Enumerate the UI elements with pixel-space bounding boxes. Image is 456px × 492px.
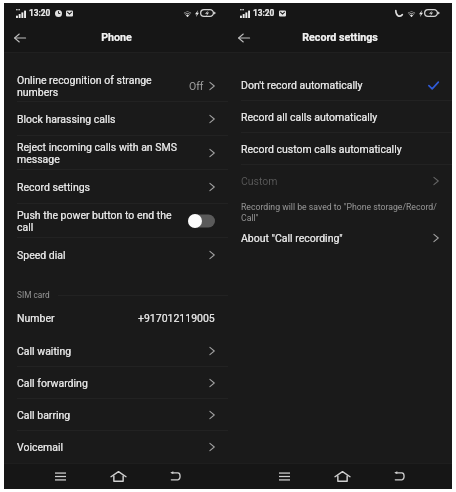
staticText: Voicemail xyxy=(17,441,203,453)
button[interactable]: Don't record automatically xyxy=(228,69,452,101)
staticText: 13:20 xyxy=(253,8,275,18)
button[interactable]: Call forwarding xyxy=(4,367,228,399)
button[interactable]: Back xyxy=(232,26,256,50)
staticText: Record custom calls automatically xyxy=(241,143,433,155)
staticText: Push the power button to end the call xyxy=(17,209,182,233)
button[interactable]: Back xyxy=(386,463,412,489)
button[interactable]: Block harassing calls xyxy=(4,102,228,136)
staticText: Record all calls automatically xyxy=(241,111,433,123)
button[interactable]: Custom xyxy=(228,165,452,197)
staticText: Block harassing calls xyxy=(17,113,203,125)
staticText: Speed dial xyxy=(17,249,203,261)
button[interactable]: Record settings xyxy=(4,170,228,204)
button[interactable]: Recent apps xyxy=(271,463,297,489)
staticText: Recording will be saved to "Phone storag… xyxy=(241,202,440,223)
button[interactable]: Call waiting xyxy=(4,334,228,367)
staticText: Custom xyxy=(241,175,427,187)
button[interactable]: Online recognition of strange numbers xyxy=(4,69,228,102)
button[interactable]: Speed dial xyxy=(4,238,228,272)
button[interactable]: Toggle off xyxy=(188,214,215,228)
button[interactable]: Home xyxy=(329,463,355,489)
staticText: Reject incoming calls with an SMS messag… xyxy=(17,141,203,165)
staticText: +917012119005 xyxy=(138,312,215,324)
staticText: Don't record automatically xyxy=(241,79,422,91)
button[interactable]: Back xyxy=(162,463,188,489)
staticText: Call barring xyxy=(17,409,203,421)
staticText: Record settings xyxy=(17,181,203,193)
staticText: Online recognition of strange numbers xyxy=(17,74,183,98)
staticText: Record settings xyxy=(302,31,378,44)
button[interactable]: Record all calls automatically xyxy=(228,101,452,133)
button[interactable]: Reject incoming calls with an SMS messag… xyxy=(4,136,228,170)
button[interactable]: Home xyxy=(105,463,131,489)
staticText: Call waiting xyxy=(17,345,203,357)
staticText: Number xyxy=(17,312,132,324)
button[interactable]: Call barring xyxy=(4,399,228,431)
staticText: 13:20 xyxy=(29,8,51,18)
staticText: Off xyxy=(189,80,204,92)
staticText: SIM card xyxy=(17,290,50,300)
button[interactable]: Back xyxy=(8,26,32,50)
staticText: Phone xyxy=(101,31,132,44)
button[interactable]: Recent apps xyxy=(47,463,73,489)
button[interactable]: Number xyxy=(4,302,228,334)
button[interactable]: Voicemail xyxy=(4,431,228,463)
staticText: Call forwarding xyxy=(17,377,203,389)
button[interactable]: Record custom calls automatically xyxy=(228,133,452,165)
button[interactable]: About "Call recording" xyxy=(228,226,452,250)
button[interactable]: Push the power button to end the call xyxy=(4,204,228,238)
staticText: About "Call recording" xyxy=(241,232,427,244)
